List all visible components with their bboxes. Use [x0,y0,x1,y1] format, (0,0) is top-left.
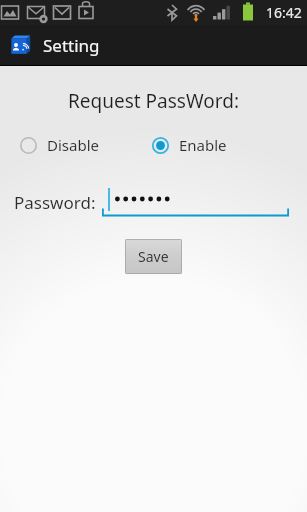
button[interactable] [102,187,289,217]
staticText: Setting [43,34,100,57]
button[interactable]: Save [125,239,182,274]
staticText: Save [138,247,169,266]
staticText: Password: [14,191,96,214]
staticText: 16:42 [266,3,302,22]
staticText: Enable [179,135,227,155]
staticText: Request PassWord: [0,88,307,114]
staticText: Disable [47,135,99,155]
other: App icon [9,33,33,57]
button[interactable]: Disable [18,131,101,159]
button[interactable]: Enable [150,131,229,159]
